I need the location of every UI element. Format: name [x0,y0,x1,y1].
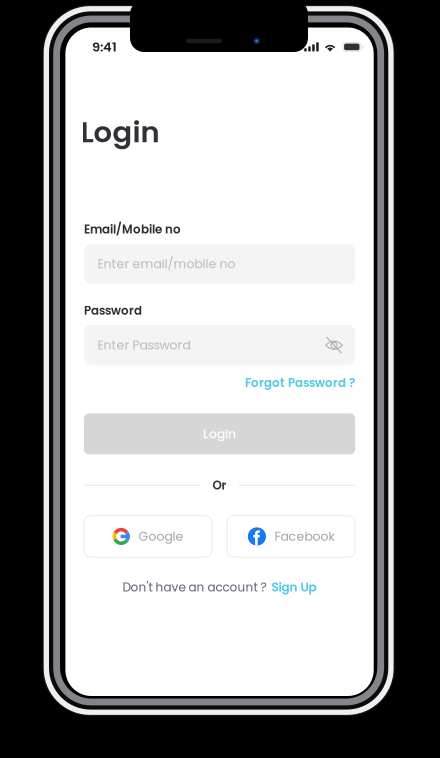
button[interactable]: Forgot Password ? [245,375,355,391]
staticText: 9:41 [92,38,117,56]
staticText: Login [81,112,160,152]
staticText: Enter Password [97,336,190,354]
staticText: Facebook [274,528,334,545]
staticText: Password [84,302,142,319]
staticText: Sign Up [272,579,317,596]
button[interactable]: Login [84,413,355,454]
button[interactable]: Sign Up [272,579,317,596]
staticText: Or [212,477,226,493]
staticText: Enter email/mobile no [97,255,235,273]
staticText: Forgot Password ? [245,375,355,391]
staticText: Email/Mobile no [84,221,181,237]
staticText: Don't have an account ? [123,579,267,596]
button[interactable]: Facebook [227,516,355,557]
button[interactable]: Google [84,516,212,557]
staticText: Google [138,528,183,545]
staticText: Login [203,425,236,443]
